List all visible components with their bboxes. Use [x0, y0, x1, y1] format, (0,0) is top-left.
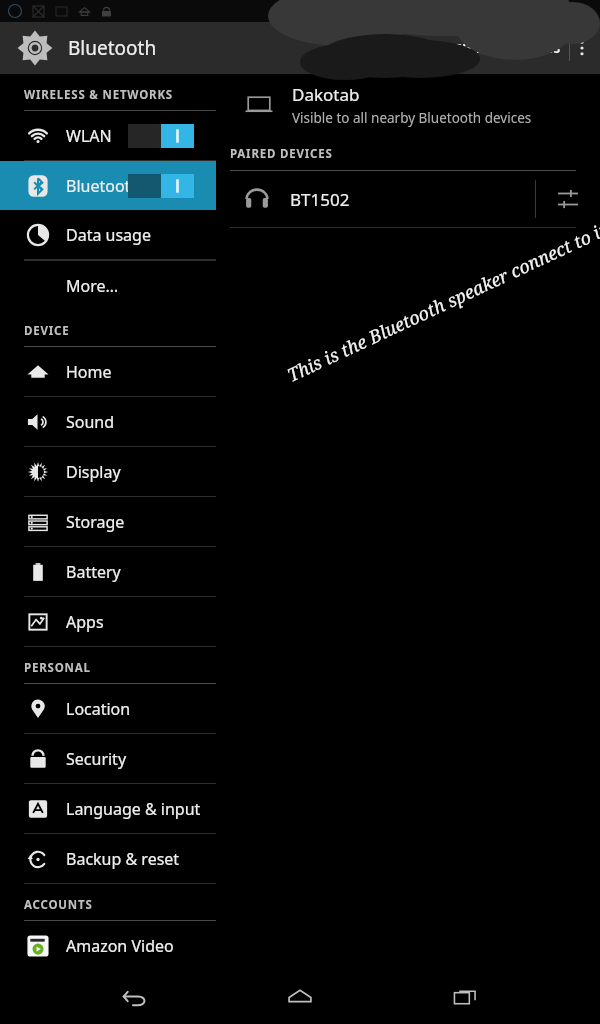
- button[interactable]: Storage: [0, 497, 216, 546]
- button[interactable]: Language & input: [0, 784, 216, 833]
- button[interactable]: WLAN: [0, 111, 216, 160]
- button[interactable]: Amazon Video: [0, 921, 216, 970]
- staticText: Backup & reset: [66, 848, 180, 870]
- button[interactable]: Data usage: [0, 210, 216, 259]
- staticText: Dakotab: [292, 83, 360, 106]
- staticText: PAIRED DEVICES: [230, 146, 333, 162]
- staticText: Location: [66, 698, 131, 720]
- staticText: WLAN: [66, 125, 112, 147]
- button[interactable]: Toggle: [128, 124, 194, 148]
- staticText: Bluetooth: [66, 175, 141, 197]
- button[interactable]: More…: [0, 261, 216, 310]
- button[interactable]: Battery: [0, 547, 216, 596]
- staticText: Apps: [66, 611, 104, 633]
- button[interactable]: Dakotab: [216, 74, 600, 136]
- staticText: More…: [66, 275, 119, 297]
- staticText: Storage: [66, 511, 125, 533]
- staticText: Home: [66, 361, 112, 383]
- staticText: PERSONAL: [24, 660, 91, 676]
- staticText: Amazon Video: [66, 935, 174, 957]
- button[interactable]: Sound: [0, 397, 216, 446]
- staticText: BT1502: [290, 188, 350, 211]
- staticText: ACCOUNTS: [24, 897, 93, 913]
- staticText: SEARCH FOR DEVICES: [421, 40, 561, 56]
- staticText: Security: [66, 748, 127, 770]
- button[interactable]: Display: [0, 447, 216, 496]
- staticText: Sound: [66, 411, 115, 433]
- staticText: This is the Bluetooth speaker connect to…: [283, 217, 600, 388]
- other: Settings: [16, 29, 54, 67]
- button[interactable]: Toggle: [128, 174, 194, 198]
- staticText: Bluetooth: [68, 35, 157, 61]
- button[interactable]: Home: [0, 347, 216, 396]
- staticText: Display: [66, 461, 121, 483]
- button[interactable]: Back: [105, 970, 165, 1024]
- staticText: Battery: [66, 561, 121, 583]
- button[interactable]: Recent apps: [435, 970, 495, 1024]
- staticText: Data usage: [66, 224, 151, 246]
- button[interactable]: Security: [0, 734, 216, 783]
- staticText: Visible to all nearby Bluetooth devices: [292, 109, 532, 127]
- button[interactable]: SEARCH FOR DEVICES: [413, 30, 569, 66]
- button[interactable]: More options: [570, 29, 594, 67]
- button[interactable]: Home: [270, 970, 330, 1024]
- button[interactable]: Device settings: [536, 173, 600, 225]
- staticText: Language & input: [66, 798, 201, 820]
- staticText: WIRELESS & NETWORKS: [24, 87, 173, 103]
- button[interactable]: Bluetooth: [0, 161, 216, 210]
- button[interactable]: BT1502: [216, 171, 523, 227]
- staticText: DEVICE: [24, 323, 70, 339]
- button[interactable]: Apps: [0, 597, 216, 646]
- button[interactable]: Backup & reset: [0, 834, 216, 883]
- button[interactable]: Location: [0, 684, 216, 733]
